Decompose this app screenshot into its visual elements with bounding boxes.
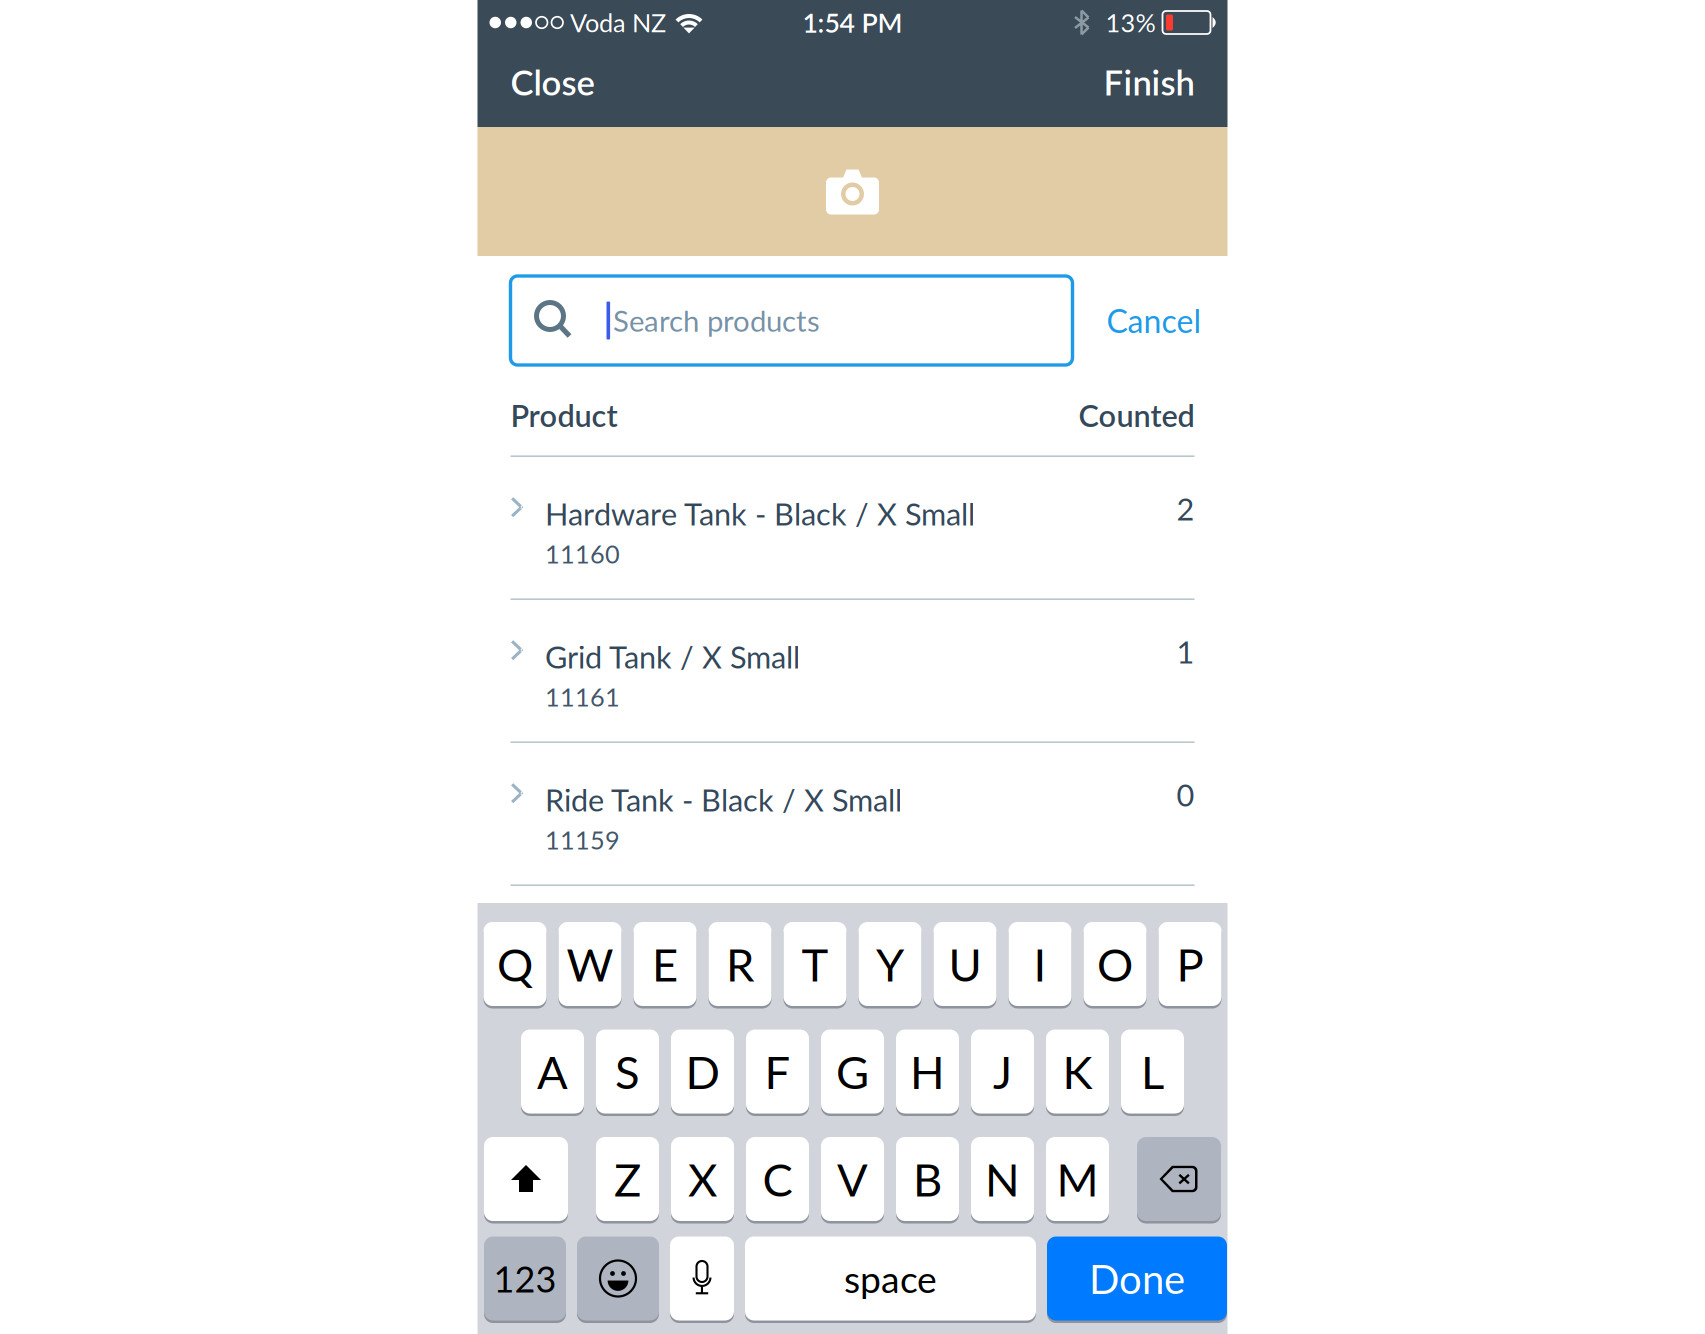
staticText: K: [1062, 1044, 1092, 1099]
button[interactable]: Take photo: [477, 127, 1227, 256]
button[interactable]: O: [1083, 922, 1146, 1008]
button[interactable]: I: [1008, 922, 1071, 1008]
button[interactable]: Emoji keyboard: [577, 1236, 659, 1323]
staticText: Close: [510, 61, 594, 103]
staticText: 0: [1176, 776, 1194, 813]
button[interactable]: Close: [477, 45, 616, 127]
staticText: M: [1056, 1152, 1098, 1206]
staticText: V: [837, 1152, 868, 1206]
button[interactable]: N: [971, 1137, 1034, 1223]
staticText: X: [688, 1152, 717, 1206]
button[interactable]: Finish: [1081, 45, 1227, 127]
button[interactable]: B: [896, 1137, 959, 1223]
button[interactable]: S: [596, 1029, 659, 1116]
staticText: I: [1033, 937, 1046, 991]
button[interactable]: Shift: [484, 1137, 568, 1223]
staticText: Search products: [613, 303, 820, 338]
staticText: Z: [614, 1152, 641, 1206]
button[interactable]: U: [933, 922, 996, 1008]
button[interactable]: A: [521, 1029, 584, 1116]
button[interactable]: Q: [483, 922, 546, 1008]
staticText: J: [993, 1044, 1012, 1099]
staticText: Hardware Tank - Black / X Small: [545, 495, 975, 532]
staticText: 11159: [545, 824, 620, 855]
button[interactable]: Ride Tank - Black / X Small: [477, 743, 1227, 886]
button[interactable]: Grid Tank / X Small: [477, 600, 1227, 743]
button[interactable]: F: [746, 1029, 809, 1116]
staticText: P: [1176, 937, 1203, 991]
staticText: Finish: [1103, 61, 1194, 103]
staticText: T: [801, 937, 828, 991]
staticText: Grid Tank / X Small: [545, 638, 800, 675]
staticText: N: [985, 1152, 1020, 1206]
staticText: Counted: [1078, 397, 1194, 434]
button[interactable]: G: [821, 1029, 884, 1116]
button[interactable]: R: [708, 922, 771, 1008]
staticText: Voda NZ: [570, 7, 666, 38]
staticText: A: [537, 1044, 568, 1099]
staticText: G: [836, 1044, 869, 1099]
button[interactable]: H: [896, 1029, 959, 1116]
staticText: D: [685, 1044, 719, 1099]
staticText: 1: [1176, 633, 1194, 670]
staticText: 11161: [545, 681, 620, 712]
staticText: F: [764, 1044, 790, 1099]
staticText: Product: [510, 397, 617, 434]
button[interactable]: X: [671, 1137, 734, 1223]
button[interactable]: V: [821, 1137, 884, 1223]
button[interactable]: Z: [596, 1137, 659, 1223]
staticText: H: [910, 1044, 945, 1099]
button[interactable]: 123: [484, 1236, 566, 1323]
staticText: 123: [493, 1257, 556, 1300]
button[interactable]: J: [971, 1029, 1034, 1116]
button[interactable]: space: [745, 1236, 1036, 1323]
staticText: E: [652, 937, 678, 991]
staticText: Cancel: [1106, 301, 1201, 340]
staticText: C: [762, 1152, 792, 1206]
staticText: Q: [497, 937, 533, 991]
staticText: 2: [1176, 490, 1194, 527]
button[interactable]: K: [1046, 1029, 1109, 1116]
button[interactable]: Dictate: [670, 1236, 734, 1323]
button[interactable]: Cancel: [1072, 276, 1217, 365]
staticText: S: [615, 1044, 640, 1099]
button[interactable]: P: [1158, 922, 1221, 1008]
staticText: Done: [1089, 1254, 1185, 1302]
staticText: 1:54 PM: [802, 6, 902, 38]
staticText: Ride Tank - Black / X Small: [545, 781, 902, 818]
button[interactable]: C: [746, 1137, 809, 1223]
staticText: R: [726, 937, 754, 991]
button[interactable]: Done: [1047, 1236, 1227, 1323]
button[interactable]: E: [633, 922, 696, 1008]
staticText: Y: [876, 937, 904, 991]
button[interactable]: M: [1046, 1137, 1109, 1223]
button[interactable]: W: [558, 922, 621, 1008]
staticText: B: [913, 1152, 942, 1206]
button[interactable]: Hardware Tank - Black / X Small: [477, 457, 1227, 600]
staticText: U: [948, 937, 981, 991]
button[interactable]: Y: [858, 922, 921, 1008]
staticText: L: [1141, 1044, 1164, 1099]
button[interactable]: Delete: [1137, 1137, 1221, 1223]
button[interactable]: L: [1121, 1029, 1184, 1116]
staticText: O: [1097, 937, 1133, 991]
button[interactable]: D: [671, 1029, 734, 1116]
staticText: 11160: [545, 538, 620, 569]
staticText: W: [566, 937, 613, 991]
staticText: 13%: [1105, 7, 1155, 38]
button[interactable]: T: [783, 922, 846, 1008]
staticText: space: [844, 1256, 937, 1301]
